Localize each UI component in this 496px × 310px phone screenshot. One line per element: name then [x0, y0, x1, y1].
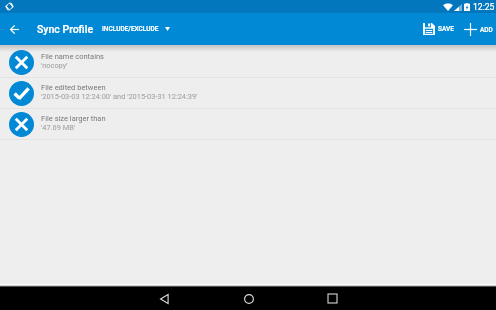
button[interactable]: SAVE [420, 19, 457, 39]
staticText: ADD [480, 26, 493, 34]
staticText: SAVE [438, 25, 454, 33]
staticText: '47.69 MB' [41, 123, 76, 132]
button[interactable]: Recent apps [317, 287, 347, 310]
button[interactable]: ADD [463, 19, 494, 40]
staticText: INCLUDE/EXCLUDE [102, 25, 159, 33]
button[interactable]: File size larger than [0, 109, 496, 139]
button[interactable]: File name contains [0, 47, 496, 77]
staticText: File name contains [41, 52, 104, 61]
staticText: File size larger than [41, 114, 106, 123]
button[interactable]: Navigate up [0, 13, 29, 45]
staticText: 12:25 [473, 2, 495, 12]
staticText: File edited between [41, 83, 106, 92]
staticText: 'nocopy' [41, 61, 68, 70]
staticText: Sync Profile [37, 23, 94, 35]
button[interactable]: Back [149, 287, 179, 310]
staticText: '2015-03-03 12:24:00' and '2015-03-31 12… [41, 92, 198, 101]
button[interactable]: Home [234, 287, 264, 310]
button[interactable]: File edited between [0, 78, 496, 108]
button[interactable]: INCLUDE/EXCLUDE [101, 21, 171, 37]
